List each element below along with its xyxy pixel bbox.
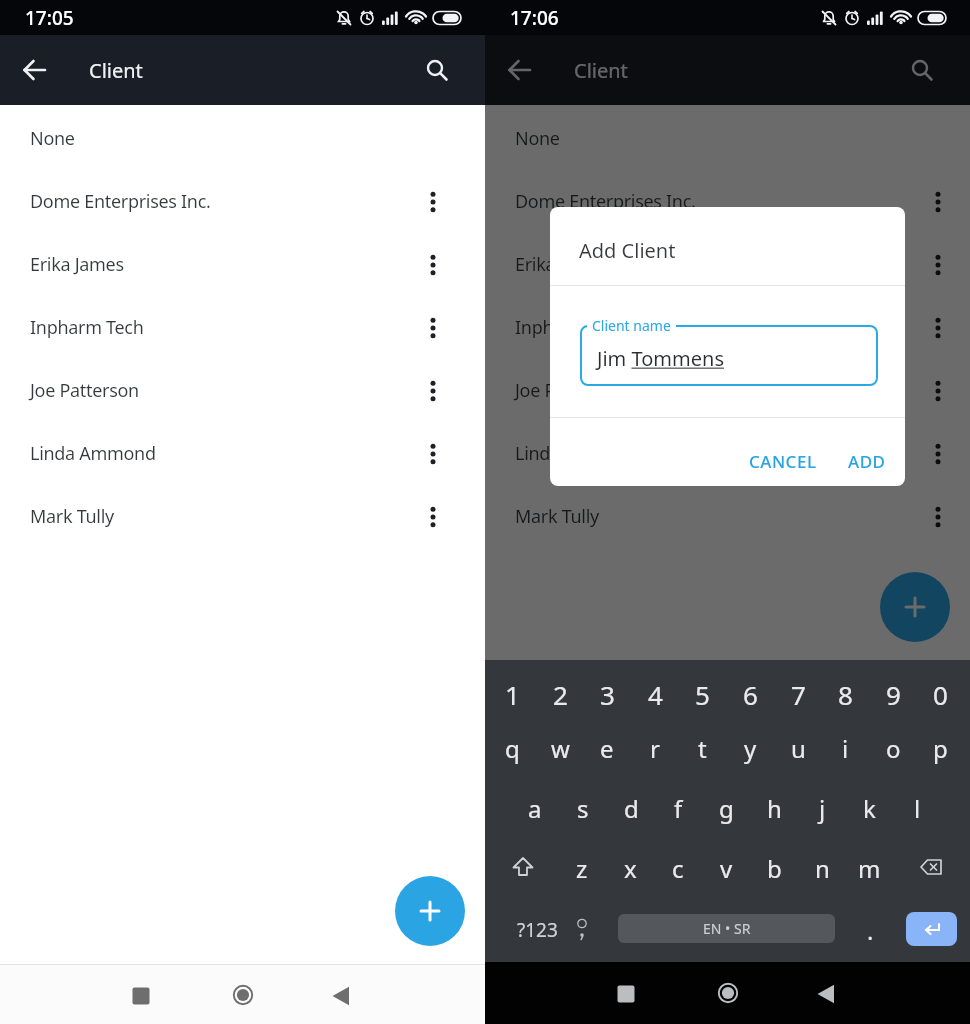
button[interactable]: [409, 178, 457, 226]
button[interactable]: [317, 972, 365, 1020]
button[interactable]: Joe Patterson: [485, 359, 970, 422]
button[interactable]: h: [751, 782, 797, 834]
button[interactable]: p: [917, 722, 963, 774]
button[interactable]: t: [679, 722, 725, 774]
button[interactable]: 1: [489, 668, 535, 720]
staticText: Client name: [592, 316, 671, 335]
button[interactable]: 3: [584, 668, 630, 720]
button[interactable]: EN • SR: [618, 914, 835, 943]
button[interactable]: [880, 572, 950, 642]
button[interactable]: [409, 241, 457, 289]
staticText: 1: [505, 677, 520, 712]
button[interactable]: i: [822, 722, 868, 774]
button[interactable]: Dome Enterprises Inc.: [485, 170, 970, 233]
button[interactable]: Inpharm Tech: [0, 296, 485, 359]
staticText: Dome Enterprises Inc.: [515, 189, 696, 214]
button[interactable]: 5: [679, 668, 725, 720]
button[interactable]: [901, 842, 961, 894]
button[interactable]: j: [799, 782, 845, 834]
button[interactable]: 6: [727, 668, 773, 720]
button[interactable]: [914, 430, 962, 478]
button[interactable]: q: [489, 722, 535, 774]
button[interactable]: 8: [822, 668, 868, 720]
button[interactable]: [898, 46, 946, 94]
button[interactable]: Mark Tully: [485, 485, 970, 548]
button[interactable]: [117, 972, 165, 1020]
button[interactable]: y: [727, 722, 773, 774]
button[interactable]: [409, 493, 457, 541]
button[interactable]: Mark Tully: [0, 485, 485, 548]
button[interactable]: 0: [917, 668, 963, 720]
button[interactable]: 4: [632, 668, 678, 720]
button[interactable]: 2: [537, 668, 583, 720]
button[interactable]: b: [751, 842, 797, 894]
button[interactable]: [906, 912, 957, 946]
button[interactable]: c: [655, 842, 701, 894]
button[interactable]: None: [485, 107, 970, 170]
staticText: 5: [695, 677, 710, 712]
staticText: y: [744, 732, 757, 765]
button[interactable]: [409, 430, 457, 478]
button[interactable]: Erika James: [0, 233, 485, 296]
button[interactable]: x: [607, 842, 653, 894]
staticText: None: [515, 126, 560, 151]
staticText: l: [914, 792, 921, 825]
button[interactable]: f: [655, 782, 701, 834]
button[interactable]: l: [894, 782, 940, 834]
button[interactable]: v: [703, 842, 749, 894]
button[interactable]: ?123: [502, 904, 572, 956]
button[interactable]: d: [608, 782, 654, 834]
staticText: ADD: [848, 450, 886, 473]
button[interactable]: 9: [870, 668, 916, 720]
button[interactable]: [914, 367, 962, 415]
button[interactable]: None: [0, 107, 485, 170]
button[interactable]: CANCEL: [749, 450, 817, 473]
button[interactable]: a: [512, 782, 558, 834]
staticText: Joe Patterson: [30, 378, 139, 403]
button[interactable]: [802, 970, 850, 1018]
button[interactable]: z: [559, 842, 605, 894]
button[interactable]: [409, 304, 457, 352]
button[interactable]: Joe Patterson: [0, 359, 485, 422]
staticText: .: [867, 914, 874, 947]
button[interactable]: m: [846, 842, 892, 894]
button[interactable]: [409, 367, 457, 415]
button[interactable]: w: [537, 722, 583, 774]
button[interactable]: n: [799, 842, 845, 894]
button[interactable]: Linda Ammond: [485, 422, 970, 485]
button[interactable]: [219, 971, 267, 1019]
staticText: s: [577, 792, 589, 825]
button[interactable]: [496, 46, 544, 94]
button[interactable]: [914, 241, 962, 289]
button[interactable]: [602, 970, 650, 1018]
button[interactable]: ADD: [848, 450, 886, 473]
button[interactable]: Dome Enterprises Inc.: [0, 170, 485, 233]
button[interactable]: o: [870, 722, 916, 774]
staticText: Linda Ammond: [30, 441, 156, 466]
staticText: d: [624, 792, 639, 825]
staticText: k: [863, 792, 876, 825]
button[interactable]: .: [850, 904, 890, 956]
staticText: h: [767, 792, 782, 825]
button[interactable]: r: [632, 722, 678, 774]
button[interactable]: [704, 969, 752, 1017]
button[interactable]: [493, 842, 553, 894]
button[interactable]: Inpharm Tech: [485, 296, 970, 359]
button[interactable]: 7: [775, 668, 821, 720]
button[interactable]: [914, 304, 962, 352]
button[interactable]: e: [584, 722, 630, 774]
button[interactable]: g: [703, 782, 749, 834]
button[interactable]: s: [560, 782, 606, 834]
button[interactable]: [559, 904, 605, 956]
button[interactable]: [914, 178, 962, 226]
button[interactable]: [11, 46, 59, 94]
button[interactable]: k: [846, 782, 892, 834]
button[interactable]: u: [775, 722, 821, 774]
button[interactable]: [413, 46, 461, 94]
button[interactable]: Linda Ammond: [0, 422, 485, 485]
button[interactable]: [395, 876, 465, 946]
button[interactable]: Erika James: [485, 233, 970, 296]
button[interactable]: [914, 493, 962, 541]
staticText: j: [819, 792, 826, 825]
staticText: a: [528, 792, 542, 825]
